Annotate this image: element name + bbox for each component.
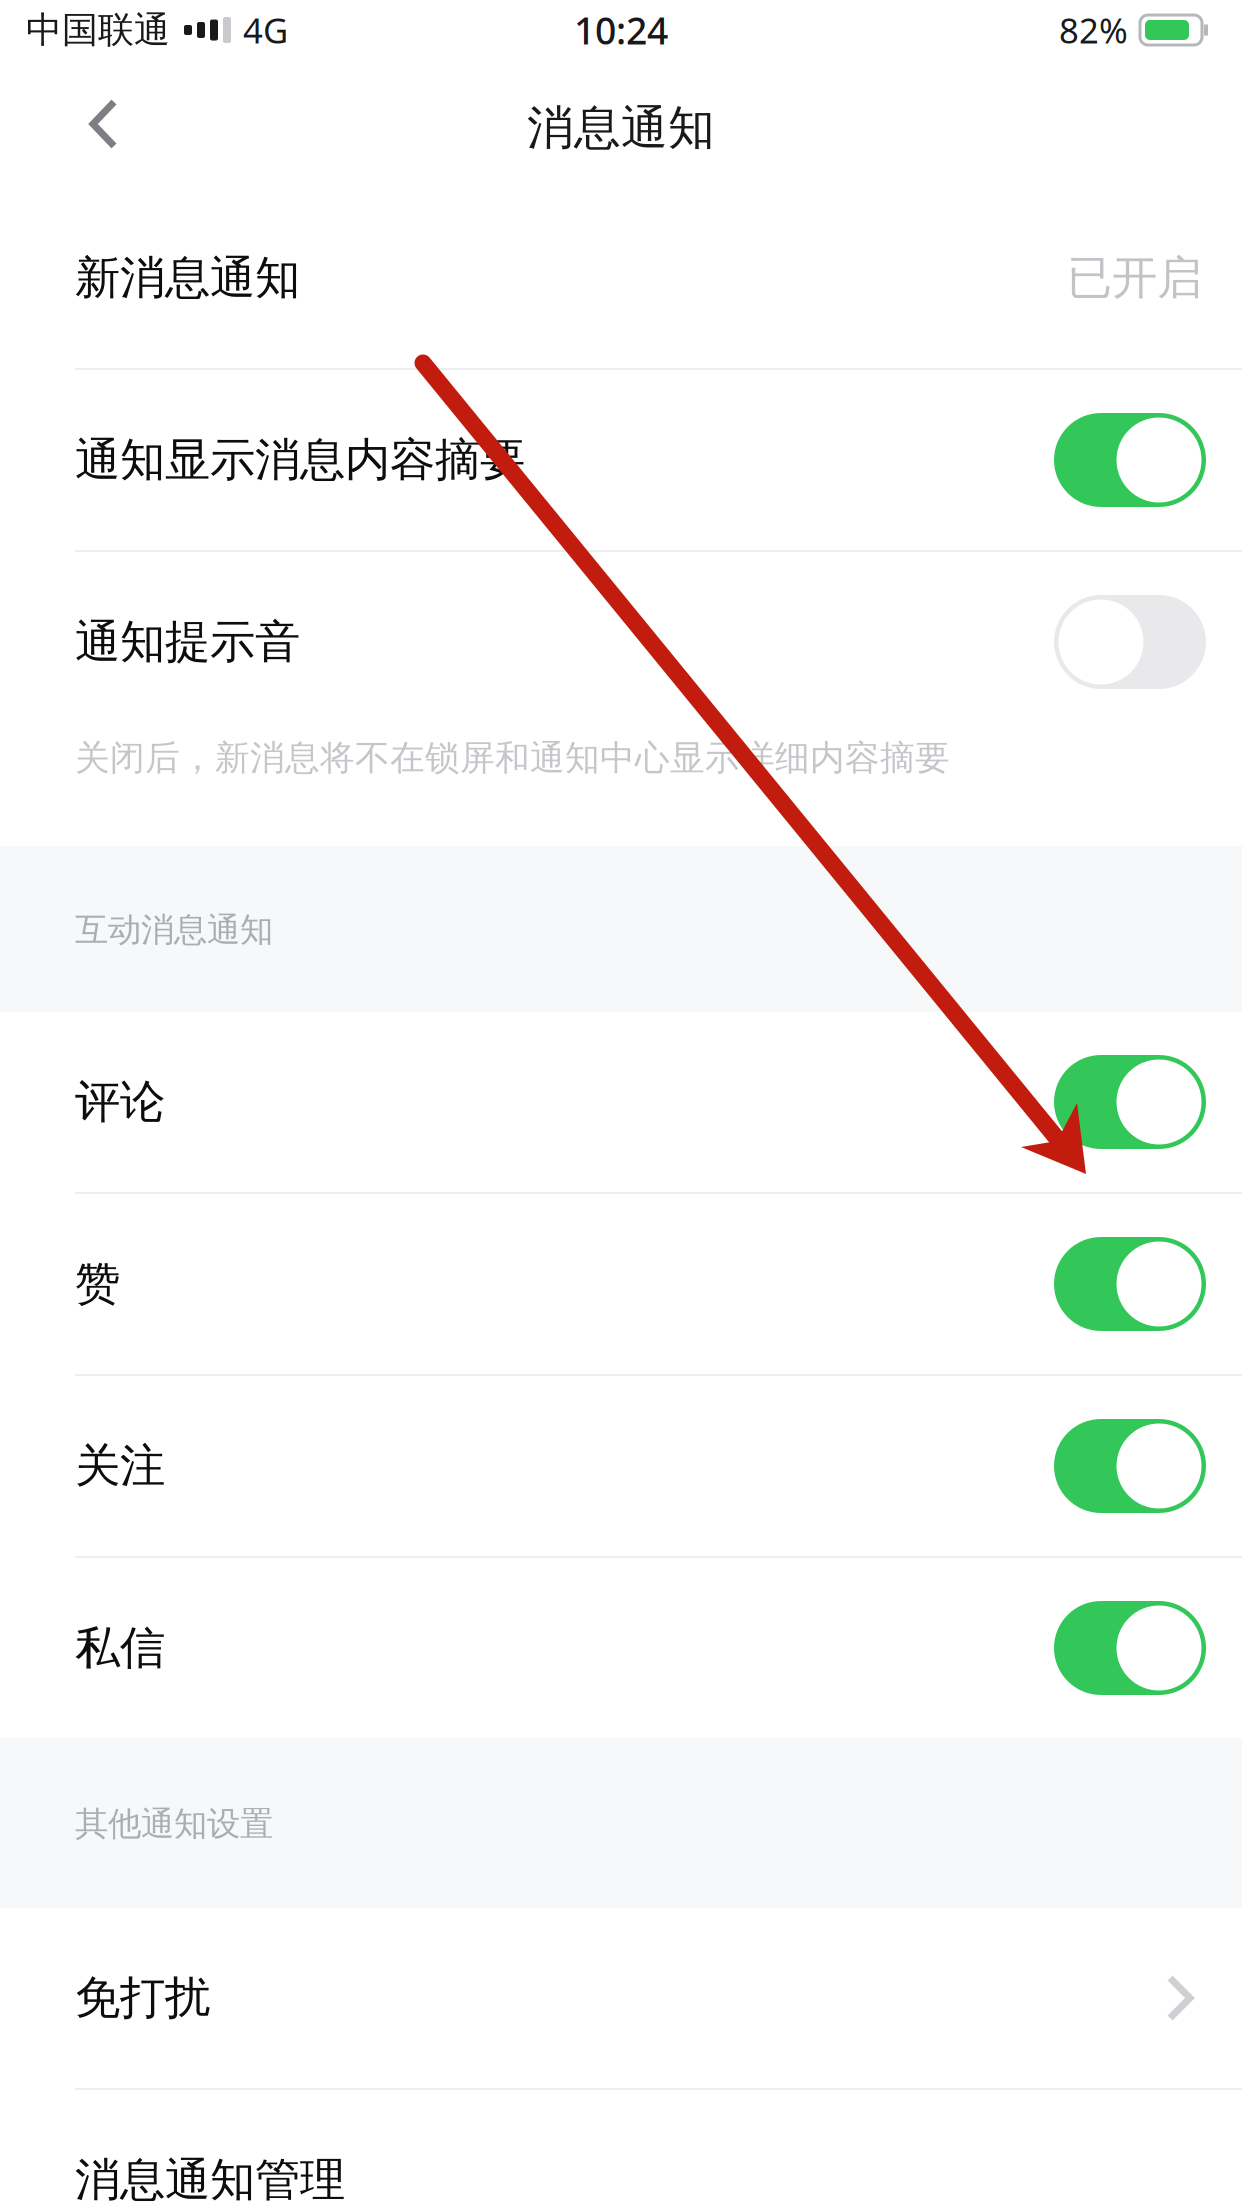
staticText: 中国联通 (26, 8, 170, 52)
button[interactable]: 通知提示音 (0, 552, 1242, 732)
button[interactable]: 免打扰 (0, 1908, 1242, 2088)
staticText: 4G (243, 7, 288, 53)
staticText: 互动消息通知 (75, 909, 273, 950)
staticText: 82% (1059, 7, 1128, 53)
button[interactable]: 赞 (0, 1194, 1242, 1374)
staticText: 已开启 (1067, 250, 1202, 306)
staticText: 免打扰 (75, 1970, 210, 2026)
button[interactable]: 私信 (0, 1558, 1242, 1738)
staticText: 关闭后，新消息将不在锁屏和通知中心显示详细内容摘要 (75, 737, 950, 779)
staticText: 赞 (75, 1256, 120, 1312)
button[interactable]: 通知显示消息内容摘要 (0, 370, 1242, 550)
staticText: 通知显示消息内容摘要 (75, 432, 525, 488)
staticText: 评论 (75, 1074, 165, 1130)
staticText: 私信 (75, 1620, 165, 1676)
staticText: 消息通知管理 (75, 2152, 345, 2208)
button[interactable]: 评论 (0, 1012, 1242, 1192)
button[interactable]: 返回 (0, 62, 159, 186)
button[interactable]: 新消息通知 (0, 188, 1242, 368)
staticText: 通知提示音 (75, 614, 300, 670)
staticText: 10:24 (574, 5, 668, 55)
button[interactable]: 关注 (0, 1376, 1242, 1556)
staticText: 关注 (75, 1438, 165, 1494)
button[interactable]: 消息通知管理 (0, 2090, 1242, 2208)
staticText: 新消息通知 (75, 250, 300, 306)
staticText: 其他通知设置 (75, 1803, 273, 1844)
staticText: 消息通知 (527, 99, 715, 157)
